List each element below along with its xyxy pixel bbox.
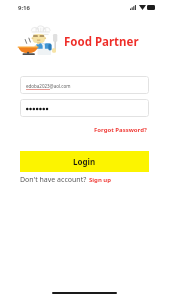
staticText: Don't have account? [20,175,87,185]
button[interactable]: Sign up [89,176,112,184]
staticText: Login [73,156,96,167]
staticText: 9:16 [18,4,30,12]
button[interactable]: Login [20,151,149,172]
button[interactable] [20,99,149,117]
staticText: Food Partner [64,34,139,50]
staticText: edoba2023@aol.com [26,83,71,89]
button[interactable]: edoba2023@aol.com [20,76,149,94]
button[interactable]: Forgot Password? [94,126,147,134]
